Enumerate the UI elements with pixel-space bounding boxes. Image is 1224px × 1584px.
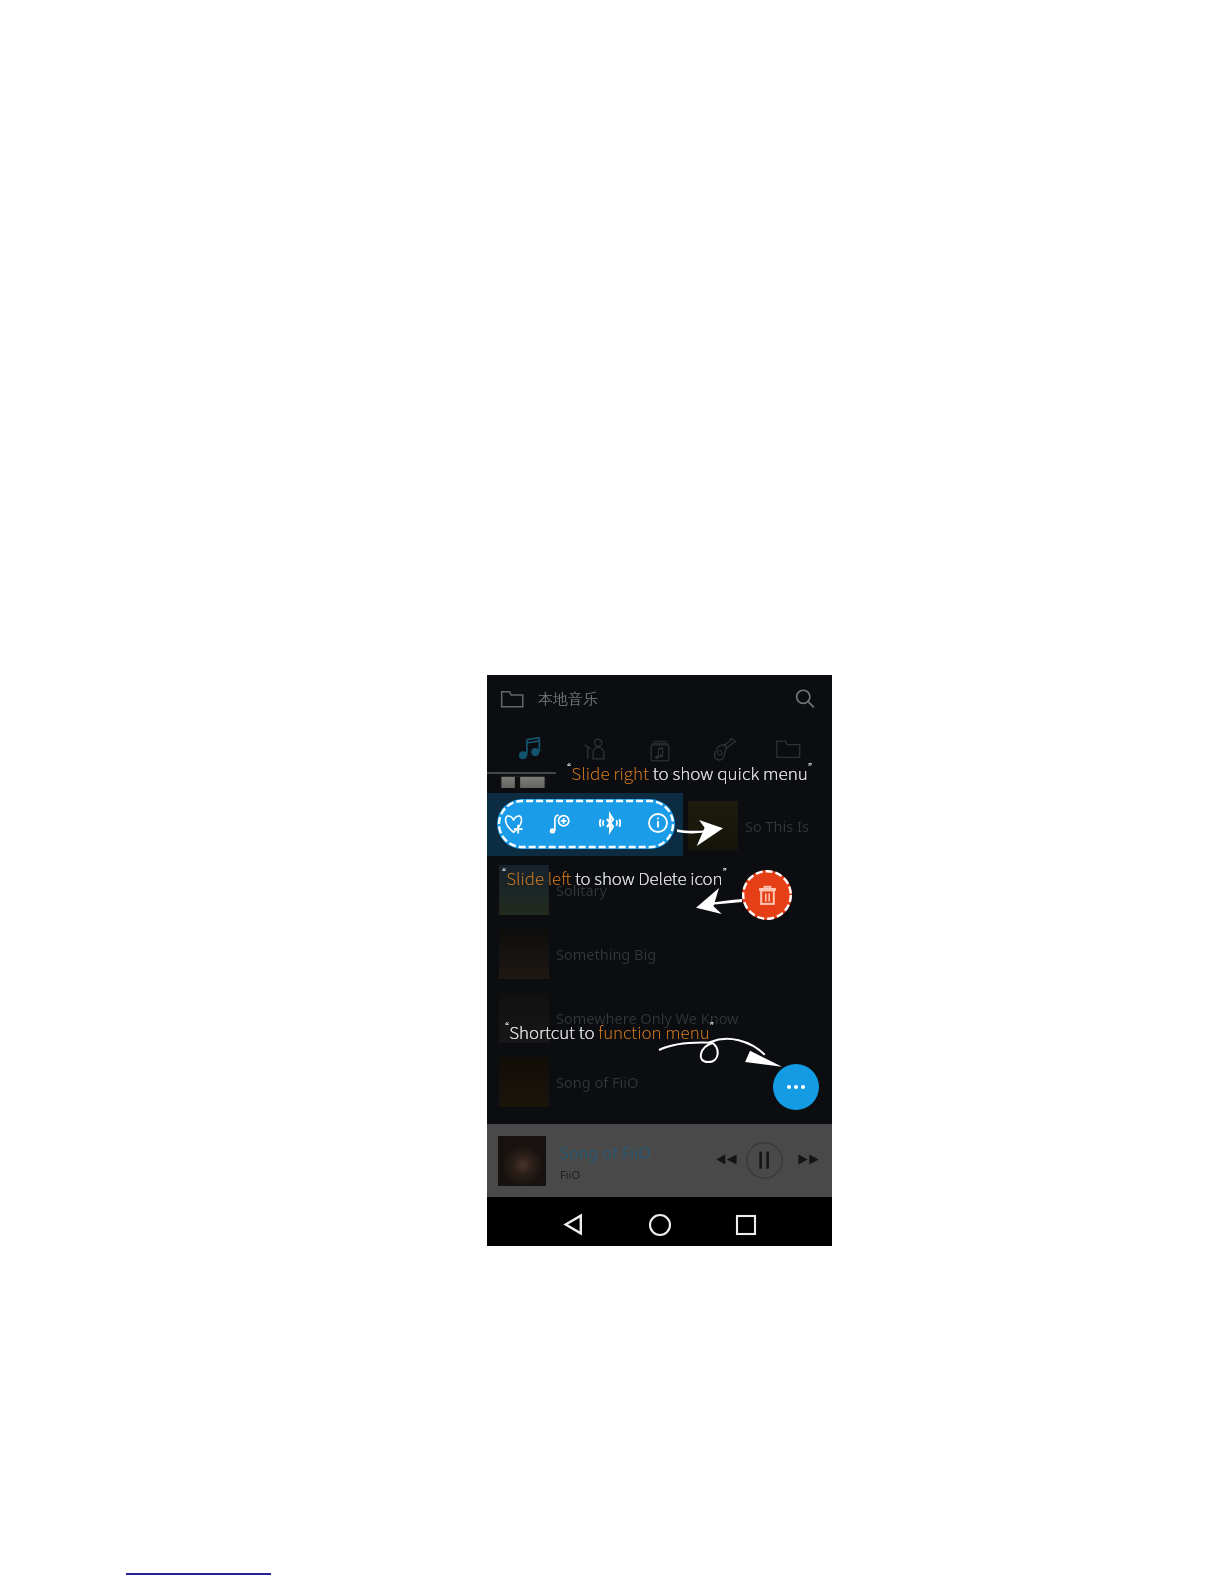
button[interactable]: Somewhere Only We Know — [487, 986, 832, 1050]
button[interactable]: Recents — [729, 1208, 762, 1241]
button[interactable]: Tab2 — [640, 729, 680, 769]
staticText: Song of FiiO — [560, 1142, 651, 1164]
button[interactable]: Delete — [742, 870, 792, 920]
button[interactable]: So This Is — [487, 794, 832, 858]
button[interactable]: Previous — [712, 1145, 740, 1173]
button[interactable]: Next — [794, 1145, 822, 1173]
button[interactable]: Folder — [499, 686, 525, 712]
button[interactable]: Song of FiiO — [487, 1050, 832, 1114]
staticText: “Slide right to show quick menu” — [567, 760, 813, 788]
button[interactable]: Solitary — [487, 858, 832, 922]
button[interactable]: Tab1 — [575, 729, 615, 769]
staticText: FiiO — [560, 1167, 580, 1182]
button[interactable]: Tab4 — [768, 729, 808, 769]
staticText: Something Big — [556, 944, 657, 964]
button[interactable]: Function menu — [773, 1064, 819, 1110]
button[interactable]: Back — [558, 1208, 591, 1241]
button[interactable]: Tab3 — [704, 729, 744, 769]
staticText: So This Is — [745, 816, 809, 836]
button[interactable]: Search — [792, 686, 818, 712]
staticText: “Slide left to show Delete icon” — [502, 865, 727, 893]
button[interactable]: Pause — [745, 1141, 784, 1180]
button[interactable]: Quick menu — [497, 799, 675, 849]
staticText: Song of FiiO — [556, 1072, 639, 1092]
button[interactable]: Something Big — [487, 922, 832, 986]
staticText: Solitary — [556, 880, 607, 900]
staticText: Somewhere Only We Know — [556, 1008, 739, 1028]
button[interactable]: Tab0 — [511, 729, 551, 769]
button[interactable]: Home — [643, 1208, 676, 1241]
staticText: “Shortcut to function menu” — [505, 1019, 714, 1047]
staticText: 本地音乐 — [538, 690, 598, 709]
